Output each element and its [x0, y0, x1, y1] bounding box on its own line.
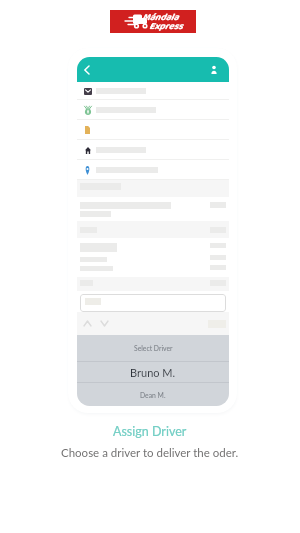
button[interactable]	[77, 140, 229, 159]
staticText: Select Driver	[134, 344, 173, 352]
button[interactable]	[77, 82, 229, 99]
button[interactable]: Next field	[101, 321, 108, 326]
button[interactable]	[80, 294, 226, 312]
button[interactable]	[77, 160, 229, 179]
staticText: Mándala	[142, 10, 179, 25]
staticText: Bruno M.	[130, 366, 176, 379]
button[interactable]: Bruno M.	[77, 362, 229, 382]
staticText: Choose a driver to deliver the oder.	[61, 446, 239, 460]
button[interactable]	[77, 120, 229, 139]
button[interactable]: Mandala Express	[110, 10, 196, 33]
button[interactable]: Back	[78, 62, 94, 78]
staticText: Express	[149, 19, 183, 34]
staticText: Assign Driver	[113, 424, 187, 439]
button[interactable]: Previous field	[84, 321, 91, 326]
staticText: Dean M.	[140, 391, 166, 399]
button[interactable]: Account	[206, 62, 221, 77]
button[interactable]: Dean M.	[77, 383, 229, 406]
button[interactable]	[77, 100, 229, 119]
button[interactable]: Select Driver	[77, 335, 229, 361]
